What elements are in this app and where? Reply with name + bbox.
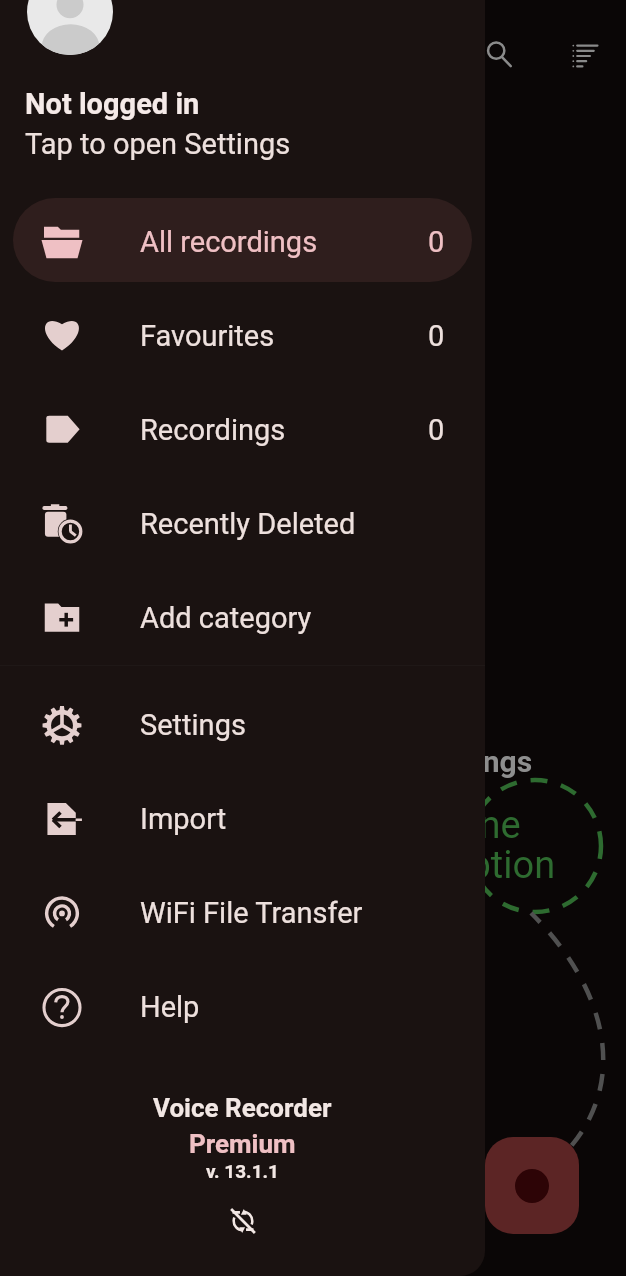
button[interactable]: All recordings bbox=[13, 198, 472, 282]
button[interactable]: Account bbox=[27, 0, 113, 55]
button[interactable]: Help bbox=[13, 963, 472, 1047]
staticText: Favourites bbox=[140, 319, 275, 353]
staticText: to start a recording option bbox=[117, 843, 556, 888]
button[interactable]: Recordings bbox=[13, 386, 472, 470]
button[interactable]: Search bbox=[477, 32, 521, 76]
button[interactable]: Sync disabled bbox=[223, 1201, 263, 1241]
staticText: Premium bbox=[189, 1129, 296, 1159]
staticText: Recently Deleted bbox=[140, 507, 356, 541]
button[interactable]: Import bbox=[13, 775, 472, 859]
button[interactable]: Not logged in bbox=[0, 83, 485, 165]
staticText: 0 bbox=[428, 225, 445, 259]
button[interactable]: Sort bbox=[563, 34, 607, 78]
staticText: Tap the microphone bbox=[184, 803, 521, 848]
button[interactable]: Record bbox=[485, 1137, 579, 1234]
staticText: WiFi File Transfer bbox=[140, 896, 363, 930]
staticText: Tap to open Settings bbox=[25, 127, 291, 161]
staticText: v. 13.1.1 bbox=[206, 1160, 279, 1182]
staticText: Not logged in bbox=[25, 87, 200, 121]
staticText: 0 bbox=[428, 319, 445, 353]
staticText: Add category bbox=[140, 601, 312, 635]
button[interactable]: WiFi File Transfer bbox=[13, 869, 472, 953]
staticText: Import bbox=[140, 802, 227, 836]
staticText: All recordings bbox=[140, 225, 318, 259]
staticText: 0 bbox=[428, 413, 445, 447]
staticText: Settings bbox=[140, 708, 246, 742]
button[interactable]: Recently Deleted bbox=[13, 480, 472, 564]
staticText: Recordings bbox=[140, 413, 286, 447]
button[interactable]: Favourites bbox=[13, 292, 472, 376]
staticText: Help bbox=[140, 990, 200, 1024]
button[interactable]: Settings bbox=[13, 681, 472, 765]
staticText: No recordings bbox=[342, 744, 533, 779]
staticText: Voice Recorder bbox=[153, 1093, 332, 1123]
button[interactable]: Add category bbox=[13, 574, 472, 658]
